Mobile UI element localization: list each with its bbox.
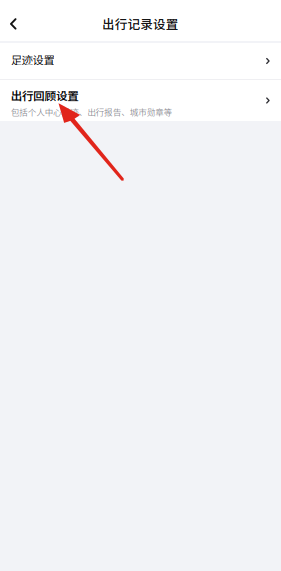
staticText: 出行记录设置 xyxy=(102,14,179,32)
staticText: 出行回顾设置 xyxy=(11,87,79,104)
staticText: 足迹设置 xyxy=(11,51,54,68)
staticText: 包括个人中心足迹、出行报告、城市勋章等 xyxy=(11,106,173,118)
button[interactable]: Back xyxy=(0,0,44,41)
button[interactable]: 出行回顾设置 xyxy=(0,80,281,121)
button[interactable]: 足迹设置 xyxy=(0,43,281,79)
